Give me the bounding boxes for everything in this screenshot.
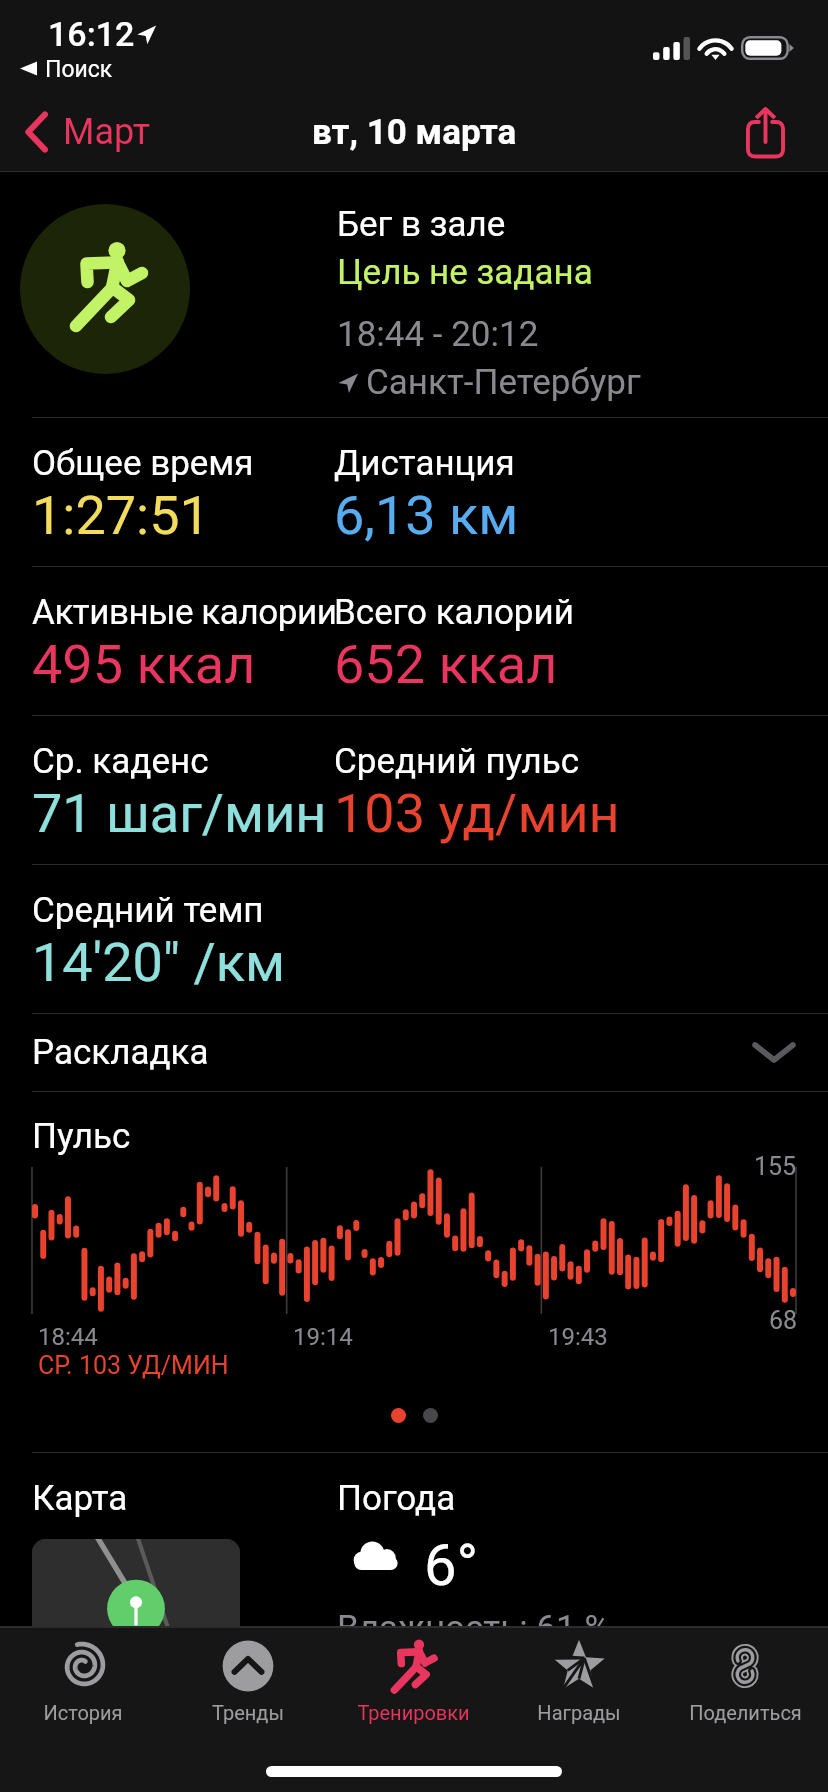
staticText: 1:27:51 bbox=[32, 484, 210, 547]
staticText: Поделиться bbox=[689, 1701, 802, 1724]
button[interactable]: Тренировки bbox=[330, 1628, 496, 1792]
button[interactable]: Поделиться bbox=[662, 1628, 828, 1792]
button[interactable]: Награды bbox=[496, 1628, 662, 1792]
staticText: Цель не задана bbox=[337, 252, 593, 293]
staticText: Март bbox=[63, 111, 151, 153]
staticText: Поиск bbox=[45, 56, 113, 83]
staticText: 103 уд/мин bbox=[334, 782, 620, 845]
staticText: 14'20" /км bbox=[32, 931, 286, 994]
staticText: 495 ккал bbox=[32, 633, 256, 696]
staticText: 71 шаг/мин bbox=[32, 782, 327, 845]
staticText: Пульс bbox=[32, 1116, 131, 1157]
staticText: История bbox=[43, 1701, 123, 1724]
staticText: Бег в зале bbox=[337, 204, 506, 245]
staticText: 6,13 км bbox=[334, 484, 519, 547]
staticText: 18:44 bbox=[38, 1323, 98, 1351]
button[interactable]: Тренды bbox=[165, 1628, 330, 1792]
button[interactable]: Март bbox=[0, 102, 165, 162]
staticText: Дистанция bbox=[334, 443, 515, 484]
staticText: Карта bbox=[32, 1478, 128, 1519]
staticText: 19:14 bbox=[293, 1323, 353, 1351]
staticText: вт, 10 марта bbox=[312, 112, 517, 153]
staticText: 19:43 bbox=[548, 1323, 608, 1351]
staticText: Средний пульс bbox=[334, 741, 579, 782]
staticText: Влажность: 61 % bbox=[337, 1608, 611, 1649]
staticText: СР. 103 УД/МИН bbox=[38, 1351, 229, 1380]
staticText: 155 bbox=[754, 1152, 797, 1181]
staticText: Тренды bbox=[212, 1701, 284, 1724]
staticText: Общее время bbox=[32, 443, 254, 484]
button[interactable]: История bbox=[0, 1628, 165, 1792]
staticText: 652 ккал bbox=[334, 633, 558, 696]
staticText: 6° bbox=[424, 1531, 479, 1599]
staticText: Активные калории bbox=[32, 592, 337, 633]
staticText: Средний темп bbox=[32, 890, 264, 931]
staticText: 68 bbox=[769, 1306, 798, 1335]
staticText: Ср. каденс bbox=[32, 741, 209, 782]
button[interactable]: Раскладка bbox=[0, 1014, 828, 1091]
staticText: Погода bbox=[337, 1478, 456, 1519]
staticText: Всего калорий bbox=[334, 592, 574, 633]
staticText: 16:12 bbox=[48, 14, 135, 54]
staticText: 18:44 - 20:12 bbox=[337, 314, 539, 355]
staticText: Санкт-Петербург bbox=[366, 362, 641, 403]
button[interactable]: Поделиться bbox=[734, 101, 796, 163]
staticText: Раскладка bbox=[32, 1032, 209, 1073]
staticText: Награды bbox=[537, 1701, 621, 1724]
staticText: Тренировки bbox=[357, 1701, 470, 1724]
